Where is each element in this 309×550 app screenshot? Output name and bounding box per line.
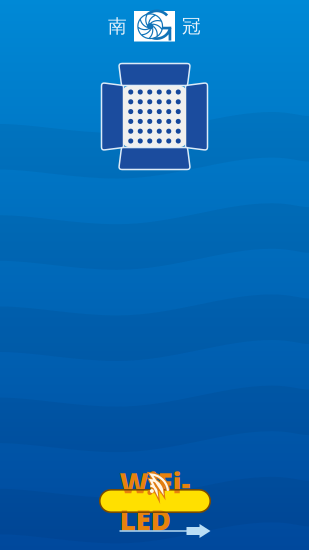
button[interactable]: WiFi-LED [0, 0, 309, 550]
staticText: WiFi-LED [119, 464, 190, 538]
staticText: 南 [108, 15, 127, 38]
staticText: 冠 [182, 15, 201, 38]
